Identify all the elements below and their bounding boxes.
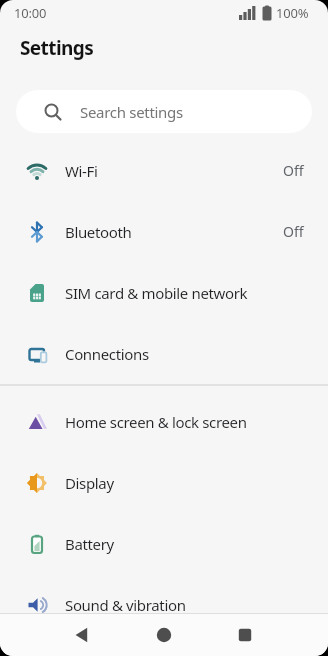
button[interactable] [58,614,106,656]
staticText: Sound & vibration [65,595,186,615]
staticText: Settings [20,35,94,61]
staticText: Display [65,473,114,493]
button[interactable]: Display [0,452,328,513]
staticText: Connections [65,344,149,364]
button[interactable]: Battery [0,513,328,574]
button[interactable] [221,614,269,656]
staticText: 100% [276,4,309,22]
button[interactable]: Bluetooth [0,201,328,262]
staticText: 10:00 [14,4,47,22]
button[interactable]: Wi-Fi [0,140,328,201]
staticText: Bluetooth [65,222,132,242]
staticText: Battery [65,534,114,554]
staticText: Off [283,161,304,180]
button[interactable]: Search settings [16,90,312,133]
button[interactable] [140,614,188,656]
button[interactable]: Sound & vibration [0,574,328,635]
staticText: Search settings [80,102,183,122]
button[interactable]: SIM card & mobile network [0,262,328,323]
button[interactable]: Home screen & lock screen [0,391,328,452]
staticText: SIM card & mobile network [65,283,248,303]
button[interactable]: Connections [0,323,328,384]
staticText: Wi-Fi [65,161,98,181]
staticText: Off [283,222,304,241]
staticText: Home screen & lock screen [65,412,247,432]
